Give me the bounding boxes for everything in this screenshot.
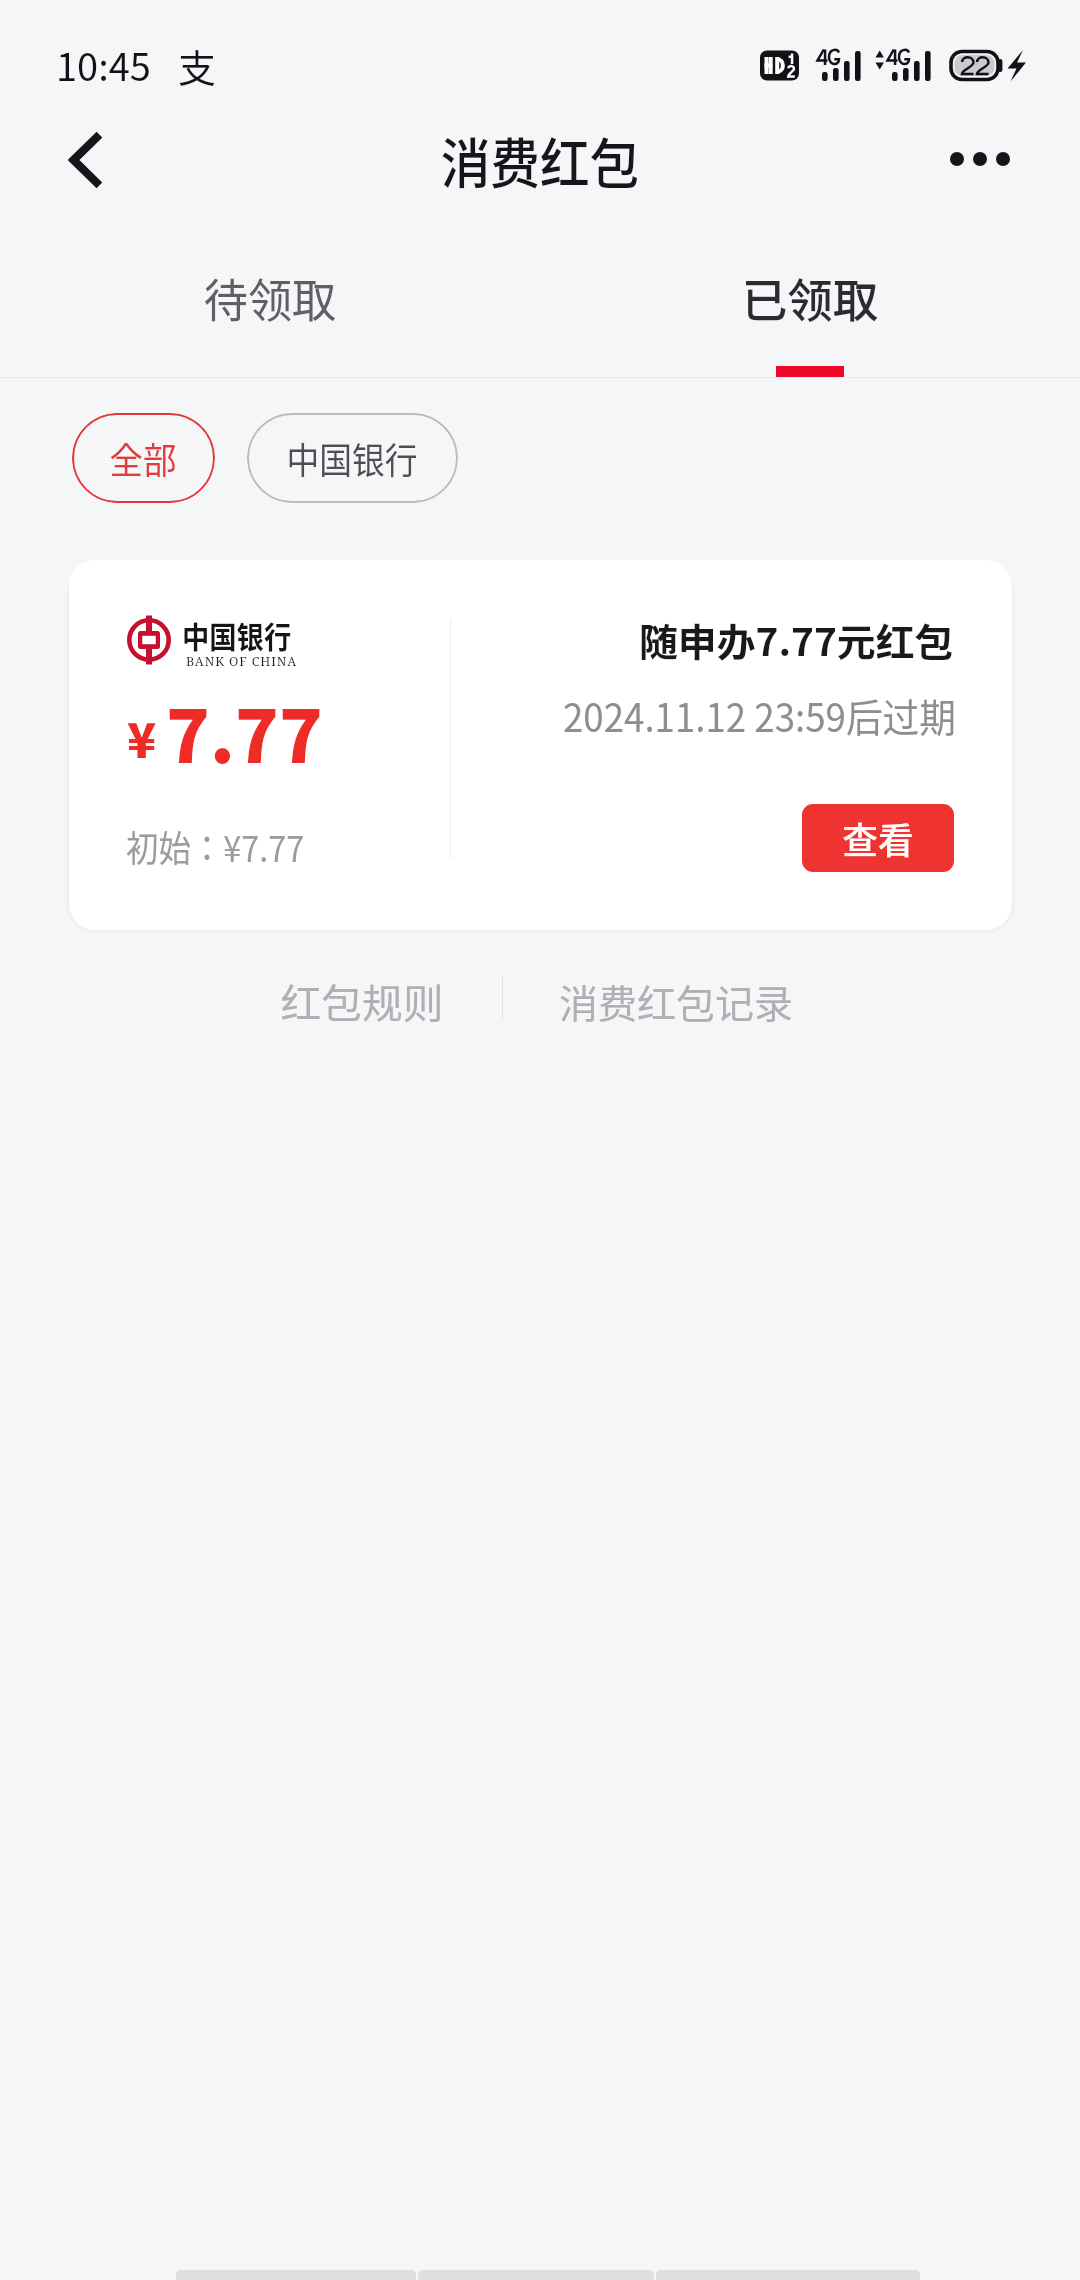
staticText: 初始：¥7.77 — [126, 820, 304, 872]
staticText: 已领取 — [742, 264, 878, 331]
staticText: 随申办7.77元红包 — [639, 612, 954, 667]
staticText: 消费红包 — [441, 121, 639, 199]
staticText: 待领取 — [204, 264, 336, 331]
staticText: 中国银行 — [182, 613, 291, 656]
staticText: BANK OF CHINA — [186, 652, 297, 670]
staticText: 红包规则 — [280, 972, 444, 1030]
staticText: 7.77 — [166, 679, 323, 783]
button[interactable]: 查看 — [802, 804, 954, 872]
staticText: 查看 — [842, 812, 915, 864]
button[interactable]: 全部 — [72, 413, 215, 503]
button[interactable]: More options — [920, 110, 1040, 220]
staticText: 2024.11.12 23:59后过期 — [563, 687, 957, 743]
button[interactable]: 待领取 — [0, 220, 540, 378]
staticText: 消费红包记录 — [559, 973, 794, 1029]
button[interactable]: 红包规则 — [261, 956, 462, 1046]
button[interactable]: Back — [27, 110, 143, 220]
button[interactable]: 中国银行 — [247, 413, 458, 503]
button[interactable]: 消费红包记录 — [541, 956, 812, 1046]
staticText: 中国银行 — [286, 432, 418, 484]
button[interactable]: 已领取 — [540, 220, 1080, 378]
staticText: 支 — [178, 38, 217, 93]
staticText: ¥ — [127, 702, 157, 772]
button[interactable]: 中国银行 — [69, 560, 1012, 930]
staticText: 全部 — [110, 432, 177, 484]
staticText: 10:45 — [56, 37, 151, 92]
